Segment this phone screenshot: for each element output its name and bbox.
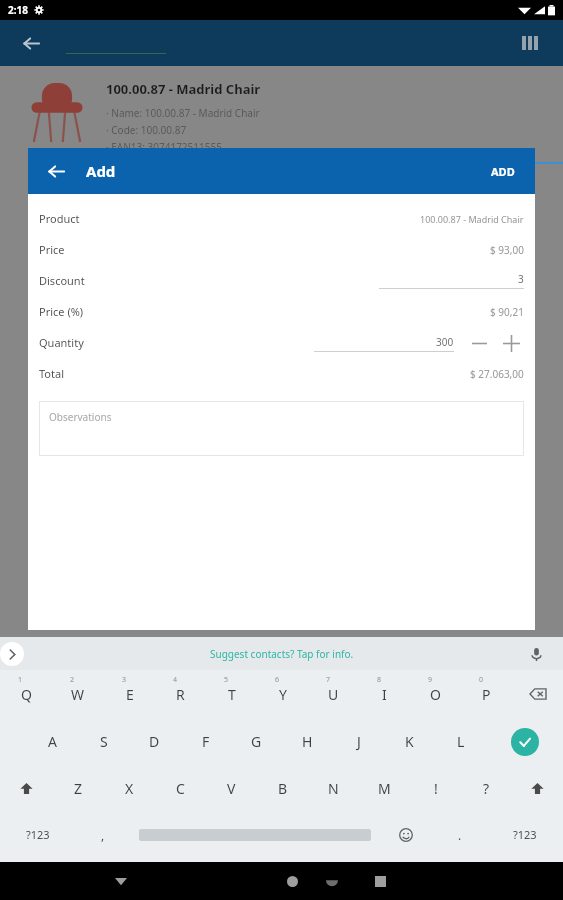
staticText: Quantity bbox=[39, 335, 84, 350]
button[interactable]: Price bbox=[28, 234, 535, 265]
button[interactable]: B bbox=[257, 765, 308, 812]
staticText: 2:18 bbox=[8, 3, 28, 17]
staticText: Q bbox=[21, 685, 32, 704]
staticText: Y bbox=[279, 685, 287, 704]
button[interactable]: Quantity bbox=[28, 327, 535, 358]
button[interactable]: Increase quantity bbox=[498, 330, 524, 356]
button[interactable]: Total bbox=[28, 358, 535, 389]
button[interactable]: Back bbox=[102, 862, 140, 900]
button[interactable]: Enter bbox=[486, 718, 563, 765]
staticText: F bbox=[202, 732, 210, 751]
staticText: Price (%) bbox=[39, 304, 84, 319]
button[interactable]: D bbox=[129, 718, 180, 765]
button[interactable]: Voice input bbox=[525, 643, 547, 665]
button[interactable]: P bbox=[461, 670, 512, 718]
button[interactable]: C bbox=[155, 765, 206, 812]
button[interactable]: Expand suggestions bbox=[0, 642, 24, 666]
staticText: 0 bbox=[479, 675, 484, 685]
button[interactable]: ADD bbox=[485, 158, 521, 185]
button[interactable]: Discount bbox=[28, 265, 535, 296]
button[interactable]: , bbox=[76, 812, 130, 857]
staticText: T bbox=[228, 685, 236, 704]
staticText: 3 bbox=[518, 272, 524, 286]
button[interactable]: H bbox=[282, 718, 333, 765]
button[interactable]: . bbox=[433, 812, 487, 857]
button[interactable]: Price (%) bbox=[28, 296, 535, 327]
staticText: 3 bbox=[122, 675, 127, 685]
staticText: $ 93,00 bbox=[490, 243, 524, 257]
button[interactable]: J bbox=[333, 718, 384, 765]
staticText: Add bbox=[86, 161, 116, 181]
button[interactable]: X bbox=[104, 765, 155, 812]
staticText: W bbox=[71, 685, 85, 704]
staticText: S bbox=[100, 732, 108, 751]
staticText: ! bbox=[434, 779, 438, 798]
button[interactable]: Product bbox=[28, 203, 535, 234]
staticText: 6 bbox=[275, 675, 280, 685]
staticText: Suggest contacts? Tap for info. bbox=[210, 647, 354, 661]
button[interactable]: W bbox=[52, 670, 104, 718]
staticText: 7 bbox=[326, 675, 331, 685]
button[interactable]: Close bbox=[42, 157, 70, 185]
button[interactable]: ? bbox=[461, 765, 512, 812]
staticText: E bbox=[126, 685, 134, 704]
button[interactable]: E bbox=[104, 670, 155, 718]
button[interactable]: U bbox=[308, 670, 359, 718]
button[interactable]: ?123 bbox=[0, 812, 76, 857]
staticText: 5 bbox=[224, 675, 229, 685]
button[interactable]: Menu bbox=[513, 26, 547, 60]
button[interactable]: G bbox=[231, 718, 282, 765]
button[interactable]: Decrease quantity bbox=[466, 330, 492, 356]
staticText: Observations bbox=[49, 410, 112, 424]
button[interactable]: S bbox=[78, 718, 129, 765]
button[interactable]: I bbox=[359, 670, 410, 718]
staticText: X bbox=[125, 779, 134, 798]
button[interactable]: T bbox=[206, 670, 257, 718]
button[interactable]: Q bbox=[0, 670, 52, 718]
button[interactable]: ?123 bbox=[487, 812, 563, 857]
staticText: Discount bbox=[39, 273, 85, 288]
staticText: N bbox=[328, 779, 339, 798]
button[interactable]: O bbox=[410, 670, 461, 718]
staticText: L bbox=[457, 732, 465, 751]
staticText: · Name: 100.00.87 - Madrid Chair bbox=[106, 106, 260, 120]
button[interactable]: R bbox=[155, 670, 206, 718]
button[interactable]: Shift bbox=[0, 765, 52, 812]
staticText: B bbox=[278, 779, 288, 798]
staticText: $ 27.063,00 bbox=[470, 367, 524, 381]
staticText: 300 bbox=[436, 335, 454, 349]
button[interactable]: Shift bbox=[512, 765, 563, 812]
button[interactable]: Z bbox=[52, 765, 104, 812]
staticText: Total bbox=[39, 366, 64, 381]
button[interactable]: N bbox=[308, 765, 359, 812]
button[interactable]: Back bbox=[16, 28, 46, 58]
staticText: 100.00.87 - Madrid Chair bbox=[106, 80, 261, 98]
button[interactable]: Keyboard toggle bbox=[317, 866, 347, 896]
button[interactable]: Recents bbox=[361, 862, 399, 900]
staticText: O bbox=[430, 685, 441, 704]
staticText: U bbox=[328, 685, 339, 704]
button[interactable]: Emoji bbox=[379, 812, 433, 857]
button[interactable]: K bbox=[384, 718, 435, 765]
button[interactable]: F bbox=[180, 718, 231, 765]
button[interactable]: ! bbox=[410, 765, 461, 812]
staticText: . bbox=[458, 827, 462, 843]
staticText: Z bbox=[74, 779, 83, 798]
staticText: 4 bbox=[173, 675, 178, 685]
staticText: 2 bbox=[70, 675, 75, 685]
button[interactable]: Home bbox=[273, 862, 311, 900]
staticText: ? bbox=[483, 779, 490, 798]
button[interactable]: Space bbox=[130, 812, 379, 857]
staticText: · EAN13: 3074172511555 bbox=[106, 140, 222, 154]
button[interactable]: V bbox=[206, 765, 257, 812]
staticText: 8 bbox=[377, 675, 382, 685]
button[interactable]: Y bbox=[257, 670, 308, 718]
button[interactable]: Observations bbox=[39, 401, 524, 456]
button[interactable]: L bbox=[435, 718, 486, 765]
button[interactable]: M bbox=[359, 765, 410, 812]
staticText: , bbox=[101, 827, 105, 843]
staticText: 9 bbox=[428, 675, 433, 685]
button[interactable]: A bbox=[27, 718, 78, 765]
staticText: Product bbox=[39, 211, 80, 226]
button[interactable]: Backspace bbox=[512, 670, 563, 718]
